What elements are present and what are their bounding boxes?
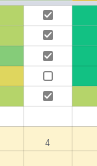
button[interactable]: Checked xyxy=(43,30,53,40)
button[interactable]: Checked xyxy=(43,51,53,61)
button[interactable]: Checked xyxy=(43,10,53,20)
button[interactable]: Checked xyxy=(43,91,53,101)
staticText: 4 xyxy=(41,137,54,147)
button[interactable]: Unchecked xyxy=(43,71,53,81)
